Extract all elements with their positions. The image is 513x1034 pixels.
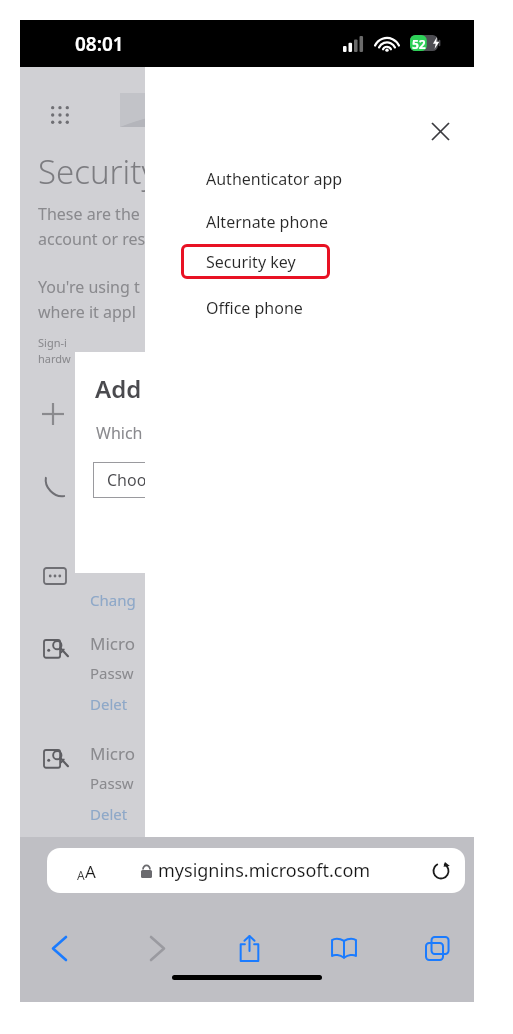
button[interactable]: Tabs (416, 927, 458, 969)
button[interactable]: Text size (66, 851, 106, 891)
button[interactable]: Delet (90, 694, 128, 714)
button[interactable]: App launcher (40, 95, 80, 135)
staticText: Passw (90, 773, 134, 793)
button[interactable]: Security key (181, 244, 330, 279)
staticText: Security key (206, 251, 296, 273)
button[interactable]: Close (420, 111, 460, 151)
button[interactable]: Bookmarks (323, 927, 365, 969)
staticText: Micro (90, 742, 135, 765)
button[interactable]: Text size (47, 848, 465, 893)
staticText: A (85, 860, 96, 883)
staticText: Which (96, 422, 143, 444)
staticText: mysignins.microsoft.com (158, 858, 371, 883)
staticText: Sign-i hardw (38, 335, 71, 366)
button[interactable]: Delet (90, 804, 128, 824)
staticText: Add (95, 372, 142, 405)
staticText: Choos (107, 469, 155, 491)
staticText: Passw (90, 663, 134, 683)
button[interactable]: Back (38, 927, 80, 969)
staticText: Micro (90, 632, 135, 655)
button[interactable]: Share (228, 927, 270, 969)
button[interactable]: Authenticator app (181, 161, 431, 196)
staticText: Authenticator app (206, 168, 343, 190)
button[interactable]: Choos (93, 462, 188, 498)
button[interactable]: Alternate phone (181, 204, 431, 239)
button[interactable]: Office phone (181, 290, 431, 325)
staticText: Security (38, 149, 157, 194)
staticText: Office phone (206, 297, 303, 319)
staticText: You're using t where it appl (38, 276, 140, 322)
staticText: 08:01 (75, 31, 124, 57)
staticText: 52 (412, 36, 426, 52)
staticText: These are the account or res (38, 203, 146, 249)
button[interactable]: Chang (90, 590, 136, 610)
staticText: A (77, 867, 85, 883)
staticText: Alternate phone (206, 211, 328, 233)
button[interactable]: Forward (136, 927, 178, 969)
button[interactable]: Reload (423, 853, 459, 889)
